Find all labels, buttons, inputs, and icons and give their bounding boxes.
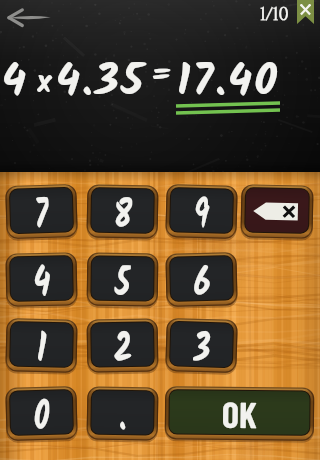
staticText: 4 xyxy=(2,48,29,118)
button[interactable]: 1 xyxy=(5,318,78,374)
staticText: 8 xyxy=(113,183,133,239)
button[interactable]: 9 xyxy=(165,184,238,240)
button[interactable]: 2 xyxy=(86,318,158,374)
staticText: 9 xyxy=(193,183,210,239)
staticText: = xyxy=(151,51,172,100)
button[interactable]: 6 xyxy=(165,252,238,308)
button[interactable]: 3 xyxy=(165,318,238,374)
button[interactable]: 5 xyxy=(87,252,158,307)
staticText: OK xyxy=(222,392,257,435)
staticText: 4.35 xyxy=(56,48,146,118)
button[interactable]: . xyxy=(86,386,158,442)
staticText: . xyxy=(119,385,127,441)
staticText: 2 xyxy=(113,317,133,373)
button[interactable]: 8 xyxy=(86,184,158,240)
button[interactable]: 0 xyxy=(5,386,78,442)
staticText: 0 xyxy=(33,385,50,441)
button[interactable]: Back xyxy=(6,6,54,32)
button[interactable]: OK xyxy=(165,386,314,442)
staticText: 5 xyxy=(114,251,131,307)
button[interactable]: 4 xyxy=(5,252,77,308)
staticText: 7 xyxy=(33,183,50,239)
staticText: x xyxy=(37,59,52,108)
staticText: 6 xyxy=(193,251,211,307)
staticText: 1 xyxy=(36,317,47,373)
staticText: 17.40 xyxy=(177,48,280,118)
staticText: 3 xyxy=(193,317,211,373)
button[interactable]: 7 xyxy=(5,184,78,240)
staticText: 1/10 xyxy=(260,3,289,26)
button[interactable]: Backspace xyxy=(240,184,313,240)
staticText: 4 xyxy=(33,251,51,307)
button[interactable]: Bookmark xyxy=(297,0,314,24)
